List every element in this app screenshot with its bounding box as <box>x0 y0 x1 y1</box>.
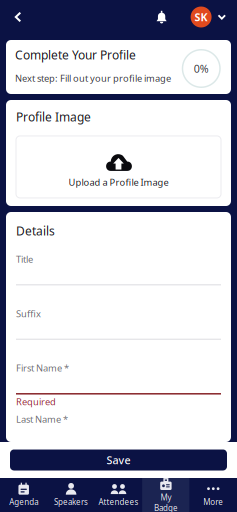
staticText: Speakers <box>54 497 88 507</box>
staticText: My <box>160 492 171 503</box>
staticText: Upload a Profile Image <box>68 176 168 188</box>
staticText: Title <box>16 253 33 265</box>
staticText: Badge <box>154 503 178 512</box>
staticText: Next step: Fill out your profile image <box>15 72 171 84</box>
staticText: 0% <box>194 61 209 76</box>
button[interactable]: Save <box>10 449 227 470</box>
button[interactable]: Agenda <box>0 478 47 512</box>
button[interactable]: Back <box>3 0 33 34</box>
button[interactable]: Speakers <box>47 478 95 512</box>
staticText: Save <box>106 453 130 467</box>
staticText: Last Name * <box>16 413 68 425</box>
button[interactable]: My <box>142 478 190 512</box>
button[interactable]: More <box>190 478 237 512</box>
staticText: SK <box>195 10 208 24</box>
staticText: Complete Your Profile <box>15 47 136 63</box>
staticText: More <box>203 497 223 507</box>
staticText: Agenda <box>9 497 38 507</box>
button[interactable]: Account menu <box>191 0 226 34</box>
staticText: Required <box>16 395 56 408</box>
staticText: Attendees <box>98 497 138 507</box>
button[interactable]: Notifications <box>148 0 176 34</box>
staticText: First Name * <box>16 362 69 374</box>
staticText: Details <box>16 223 55 239</box>
staticText: Suffix <box>16 307 41 320</box>
button[interactable]: Upload a Profile Image <box>16 136 221 198</box>
staticText: Profile Image <box>16 109 91 125</box>
button[interactable]: Attendees <box>95 478 142 512</box>
